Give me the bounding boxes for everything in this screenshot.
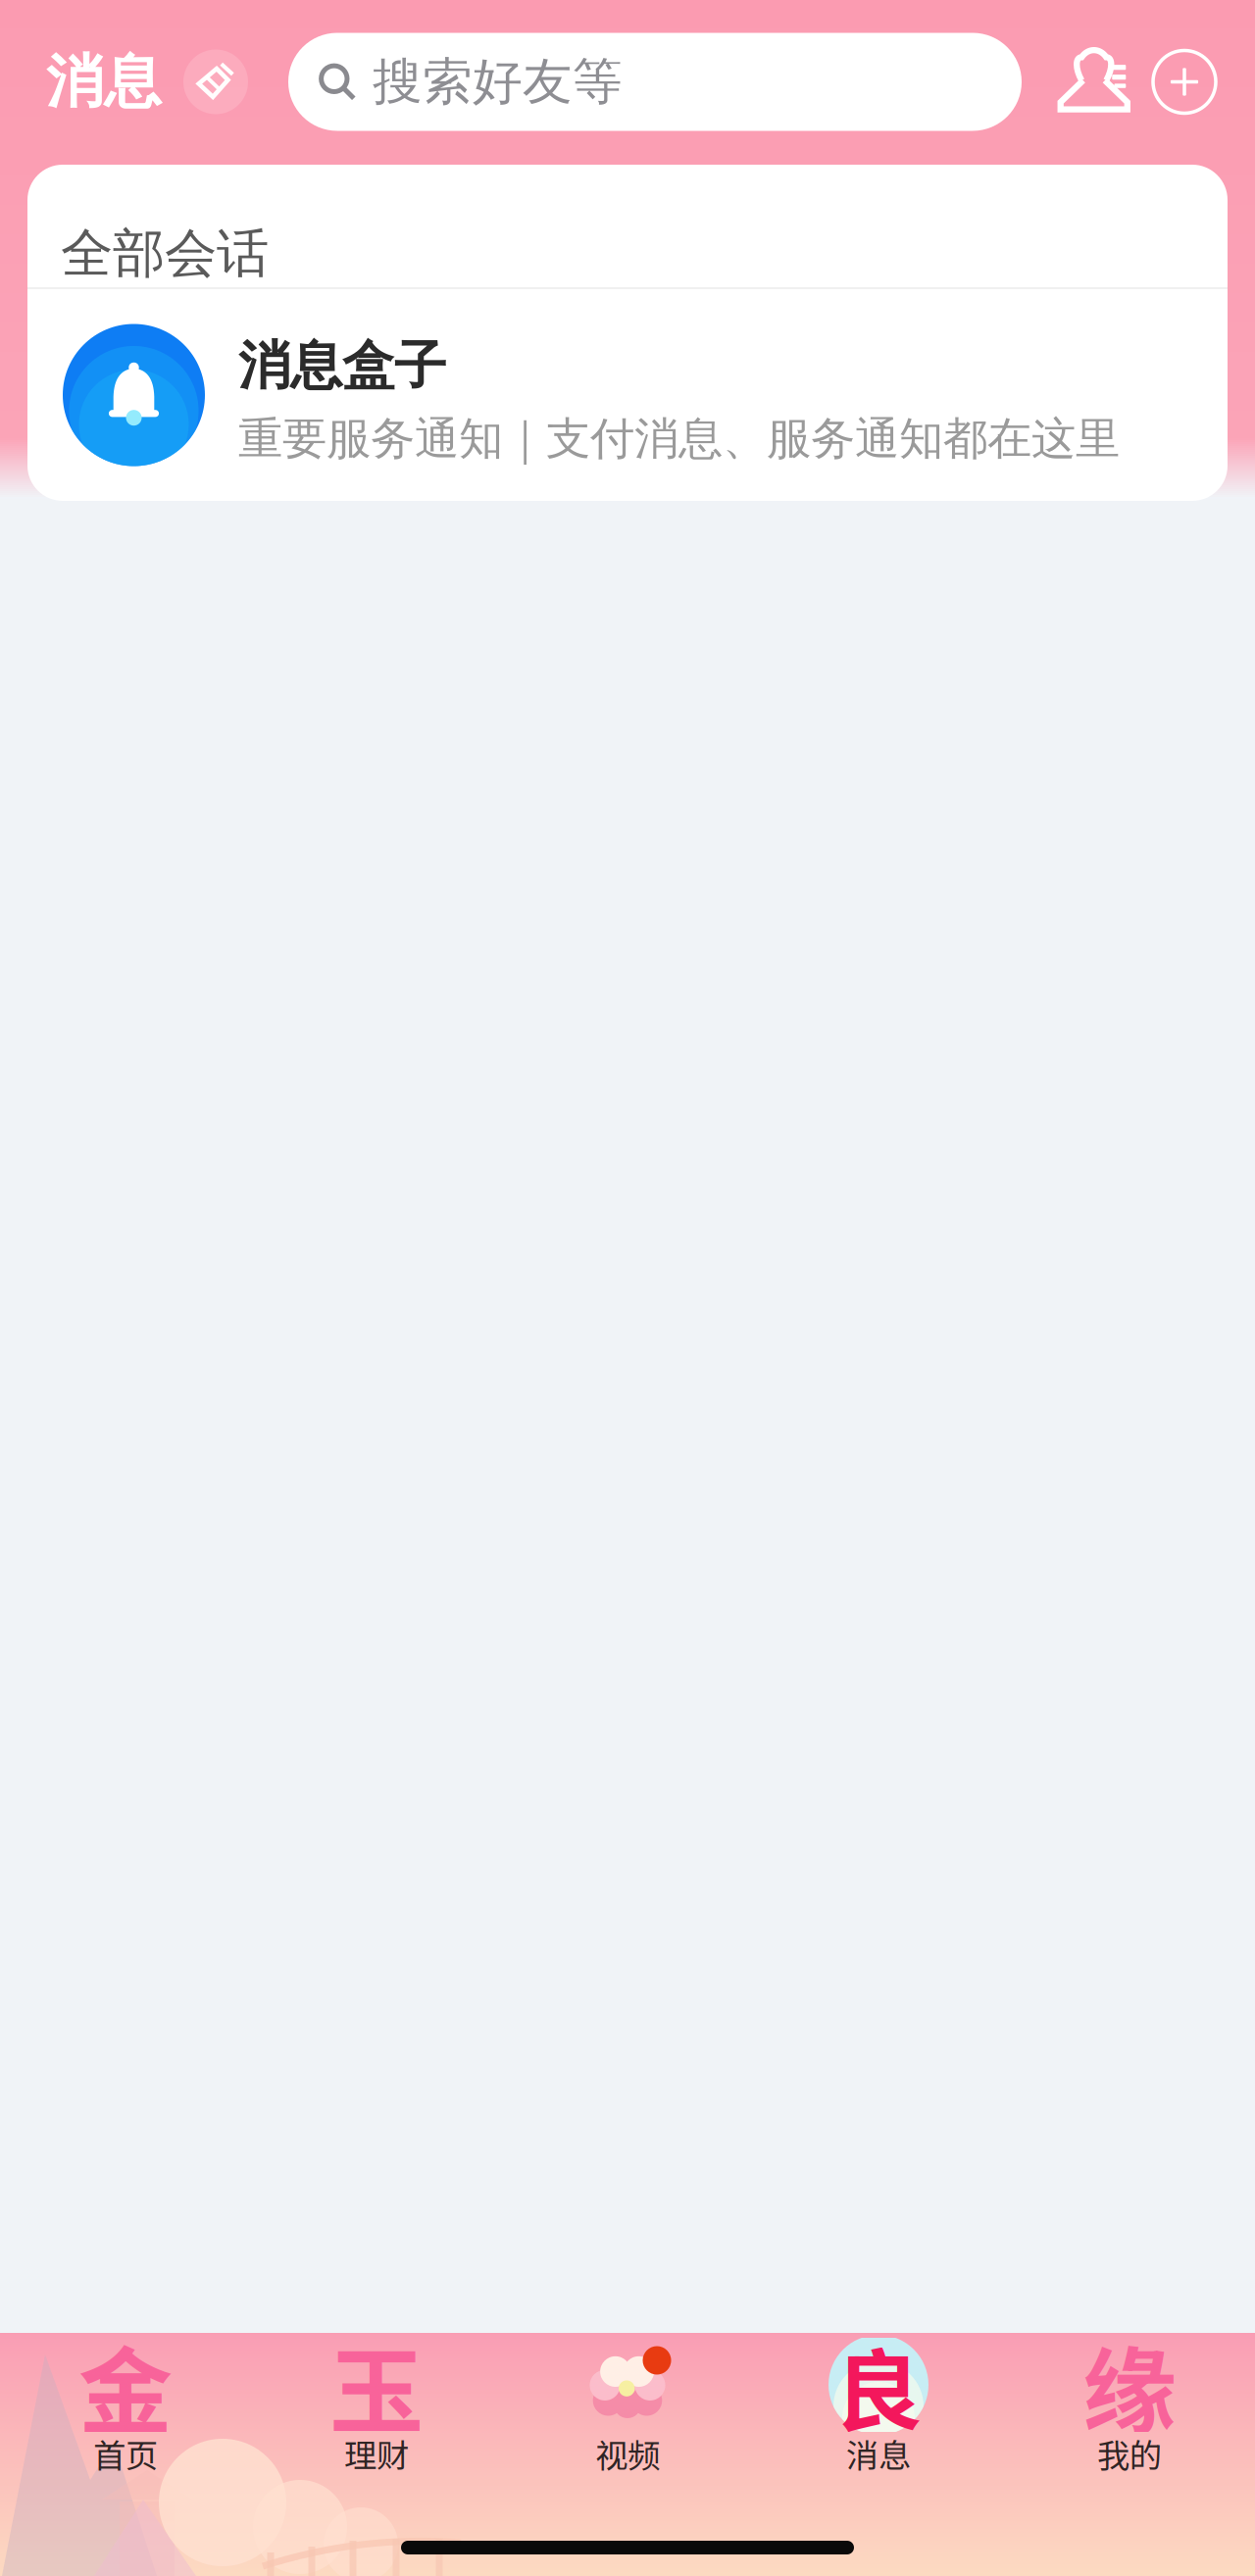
staticText: 消息 [846, 2430, 911, 2477]
staticText: 搜索好友等 [373, 51, 623, 112]
button[interactable]: 一键清理 [183, 50, 248, 114]
staticText: 视频 [595, 2430, 660, 2477]
button[interactable]: 玉 [251, 2338, 502, 2475]
button[interactable]: 消息盒子 [27, 289, 1228, 501]
staticText: 金 [78, 2317, 173, 2453]
staticText: 我的 [1097, 2430, 1162, 2477]
button[interactable]: 金 [0, 2338, 251, 2475]
button[interactable]: 缘 [1004, 2338, 1255, 2475]
button[interactable]: 良 [753, 2338, 1004, 2475]
staticText: 全部会话 [61, 222, 269, 286]
staticText: 首页 [93, 2430, 158, 2477]
button[interactable]: 添加 [1153, 50, 1216, 113]
button[interactable]: 通讯录 [1055, 44, 1131, 120]
button[interactable]: 搜索好友等 [288, 33, 1022, 131]
staticText: 消息 [46, 47, 162, 117]
staticText: 重要服务通知｜支付消息、服务通知都在这里 [238, 412, 1120, 466]
button[interactable]: 视频 [502, 2338, 753, 2475]
staticText: 理财 [344, 2430, 409, 2477]
staticText: 玉 [329, 2317, 424, 2453]
staticText: 良 [834, 2321, 923, 2449]
staticText: 消息盒子 [238, 334, 446, 398]
staticText: 缘 [1082, 2317, 1177, 2453]
